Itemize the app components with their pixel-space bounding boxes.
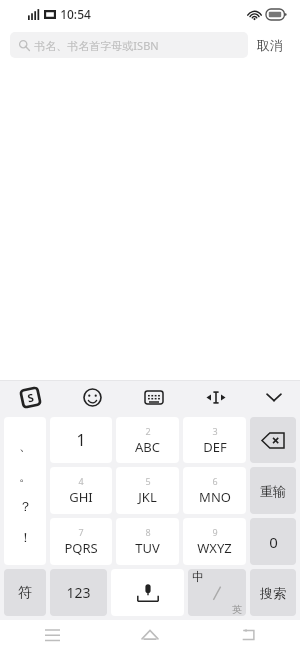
staticText: 2 xyxy=(145,425,151,437)
button[interactable]: Sogou input method xyxy=(0,381,61,413)
staticText: 英 xyxy=(232,603,242,616)
staticText: 10:54 xyxy=(60,6,91,22)
button[interactable]: Keyboard layout xyxy=(123,381,185,413)
staticText: DEF xyxy=(203,438,227,456)
button[interactable]: Hide keyboard xyxy=(247,381,300,413)
button[interactable]: 搜索 xyxy=(250,569,296,616)
button[interactable]: 取消 xyxy=(248,33,292,57)
button[interactable]: 4 xyxy=(50,467,112,514)
staticText: PQRS xyxy=(64,539,98,557)
staticText: 重输 xyxy=(260,483,286,499)
button[interactable]: 书名、书名首字母或ISBN xyxy=(10,32,248,58)
button[interactable]: Move cursor xyxy=(185,381,247,413)
staticText: 搜索 xyxy=(260,585,286,601)
button[interactable]: 2 xyxy=(116,417,179,463)
staticText: 书名、书名首字母或ISBN xyxy=(34,38,159,53)
button[interactable]: Emoji xyxy=(61,381,123,413)
staticText: 9 xyxy=(212,526,218,538)
staticText: WXYZ xyxy=(197,539,232,557)
staticText: 、 xyxy=(19,437,32,453)
staticText: 5 xyxy=(145,475,151,487)
button[interactable]: 7 xyxy=(50,518,112,565)
button[interactable] xyxy=(111,569,184,616)
button[interactable]: 重输 xyxy=(250,467,296,514)
button[interactable]: 6 xyxy=(183,467,246,514)
button[interactable]: 1 xyxy=(50,417,112,463)
staticText: 6 xyxy=(212,475,218,487)
staticText: JKL xyxy=(138,488,157,506)
button[interactable]: Home xyxy=(128,620,172,650)
button[interactable]: Back xyxy=(226,620,270,650)
staticText: 中 xyxy=(192,569,204,584)
button[interactable]: 0 xyxy=(250,518,296,565)
staticText: 符 xyxy=(18,584,32,602)
button[interactable]: Recents xyxy=(30,620,74,650)
staticText: 。 xyxy=(19,468,32,484)
button[interactable]: 8 xyxy=(116,518,179,565)
staticText: ？ xyxy=(19,498,32,514)
button[interactable]: 9 xyxy=(183,518,246,565)
staticText: 0 xyxy=(269,532,278,552)
staticText: MNO xyxy=(199,488,231,506)
staticText: 123 xyxy=(66,583,91,602)
button[interactable]: 、 xyxy=(4,417,46,565)
button[interactable]: 123 xyxy=(50,569,107,616)
staticText: S xyxy=(25,389,35,405)
button[interactable]: Delete xyxy=(250,417,296,463)
button[interactable]: 5 xyxy=(116,467,179,514)
staticText: 7 xyxy=(78,526,84,538)
staticText: GHI xyxy=(69,488,93,506)
staticText: 3 xyxy=(212,425,218,437)
staticText: ！ xyxy=(19,529,32,545)
staticText: 4 xyxy=(78,475,84,487)
staticText: TUV xyxy=(135,539,160,557)
button[interactable]: 3 xyxy=(183,417,246,463)
button[interactable]: 符 xyxy=(4,569,46,616)
staticText: 取消 xyxy=(257,37,283,53)
staticText: ABC xyxy=(135,438,160,456)
staticText: 1 xyxy=(76,429,86,451)
button[interactable]: 中 xyxy=(188,569,246,616)
staticText: 8 xyxy=(145,526,151,538)
